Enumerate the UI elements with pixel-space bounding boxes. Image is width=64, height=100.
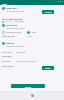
staticText: Start Index bbox=[2, 65, 14, 68]
button[interactable]: SPLIT bbox=[11, 84, 45, 88]
button[interactable]: Output bbox=[0, 41, 64, 48]
staticText: Separator bbox=[2, 55, 16, 58]
staticText: 312 KB · 12,000 lines bbox=[5, 20, 25, 23]
button[interactable]: Number of files bbox=[2, 31, 22, 34]
staticText: text_large bbox=[16, 51, 26, 54]
staticText: File Path bbox=[2, 60, 16, 63]
staticText: SELECT bbox=[45, 11, 52, 14]
staticText: /storage/emulated/0 bbox=[16, 60, 37, 63]
button[interactable]: File Name bbox=[0, 51, 64, 55]
staticText: Lines per file bbox=[2, 35, 15, 38]
button[interactable]: 312 KB · 12,000 lines bbox=[2, 20, 25, 23]
staticText: Output bbox=[6, 42, 15, 45]
staticText: _ bbox=[16, 55, 17, 58]
button[interactable]: Split Type bbox=[0, 23, 64, 30]
staticText: Lines bbox=[31, 31, 37, 34]
staticText: 1000 bbox=[27, 35, 32, 38]
button[interactable]: File Path bbox=[0, 60, 64, 64]
staticText: 1 bbox=[27, 65, 29, 68]
staticText: SPLIT bbox=[25, 85, 32, 88]
button[interactable]: Separator bbox=[0, 55, 64, 59]
button[interactable]: SELECT bbox=[42, 10, 54, 14]
staticText: Input File bbox=[6, 7, 17, 10]
staticText: Split bbox=[2, 2, 8, 5]
staticText: Number of files bbox=[6, 31, 22, 34]
staticText: Destination settings bbox=[6, 45, 25, 48]
staticText: Choose how to split bbox=[6, 27, 25, 30]
staticText: RESET bbox=[45, 67, 51, 70]
staticText: File Name bbox=[2, 51, 16, 54]
button[interactable]: RESET bbox=[42, 66, 54, 70]
button[interactable]: Input File bbox=[0, 6, 64, 14]
staticText: text_large_file.txt bbox=[2, 18, 23, 21]
staticText: Select the input file bbox=[6, 10, 24, 13]
button[interactable]: Lines bbox=[27, 31, 37, 34]
button[interactable]: Home bbox=[31, 94, 34, 97]
staticText: Split Type bbox=[6, 24, 18, 27]
